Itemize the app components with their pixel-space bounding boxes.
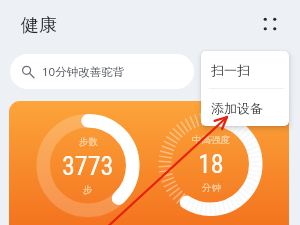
button[interactable]: 添加设备 xyxy=(201,89,289,126)
staticText: 3773 xyxy=(62,151,114,181)
staticText: 分钟 xyxy=(202,182,221,194)
button[interactable]: 扫一扫 xyxy=(201,51,289,88)
staticText: 扫一扫 xyxy=(211,62,250,78)
button[interactable]: 健康 xyxy=(21,14,57,37)
staticText: 中高强度 xyxy=(192,134,230,146)
button[interactable]: 10分钟改善驼背 xyxy=(10,54,194,89)
staticText: 步数 xyxy=(79,136,98,148)
staticText: 健康 xyxy=(21,14,57,37)
staticText: 18 xyxy=(198,149,224,179)
button[interactable]: More options xyxy=(252,6,288,42)
staticText: 步 xyxy=(83,184,93,196)
staticText: 10分钟改善驼背 xyxy=(42,64,125,80)
staticText: 添加设备 xyxy=(211,100,263,116)
